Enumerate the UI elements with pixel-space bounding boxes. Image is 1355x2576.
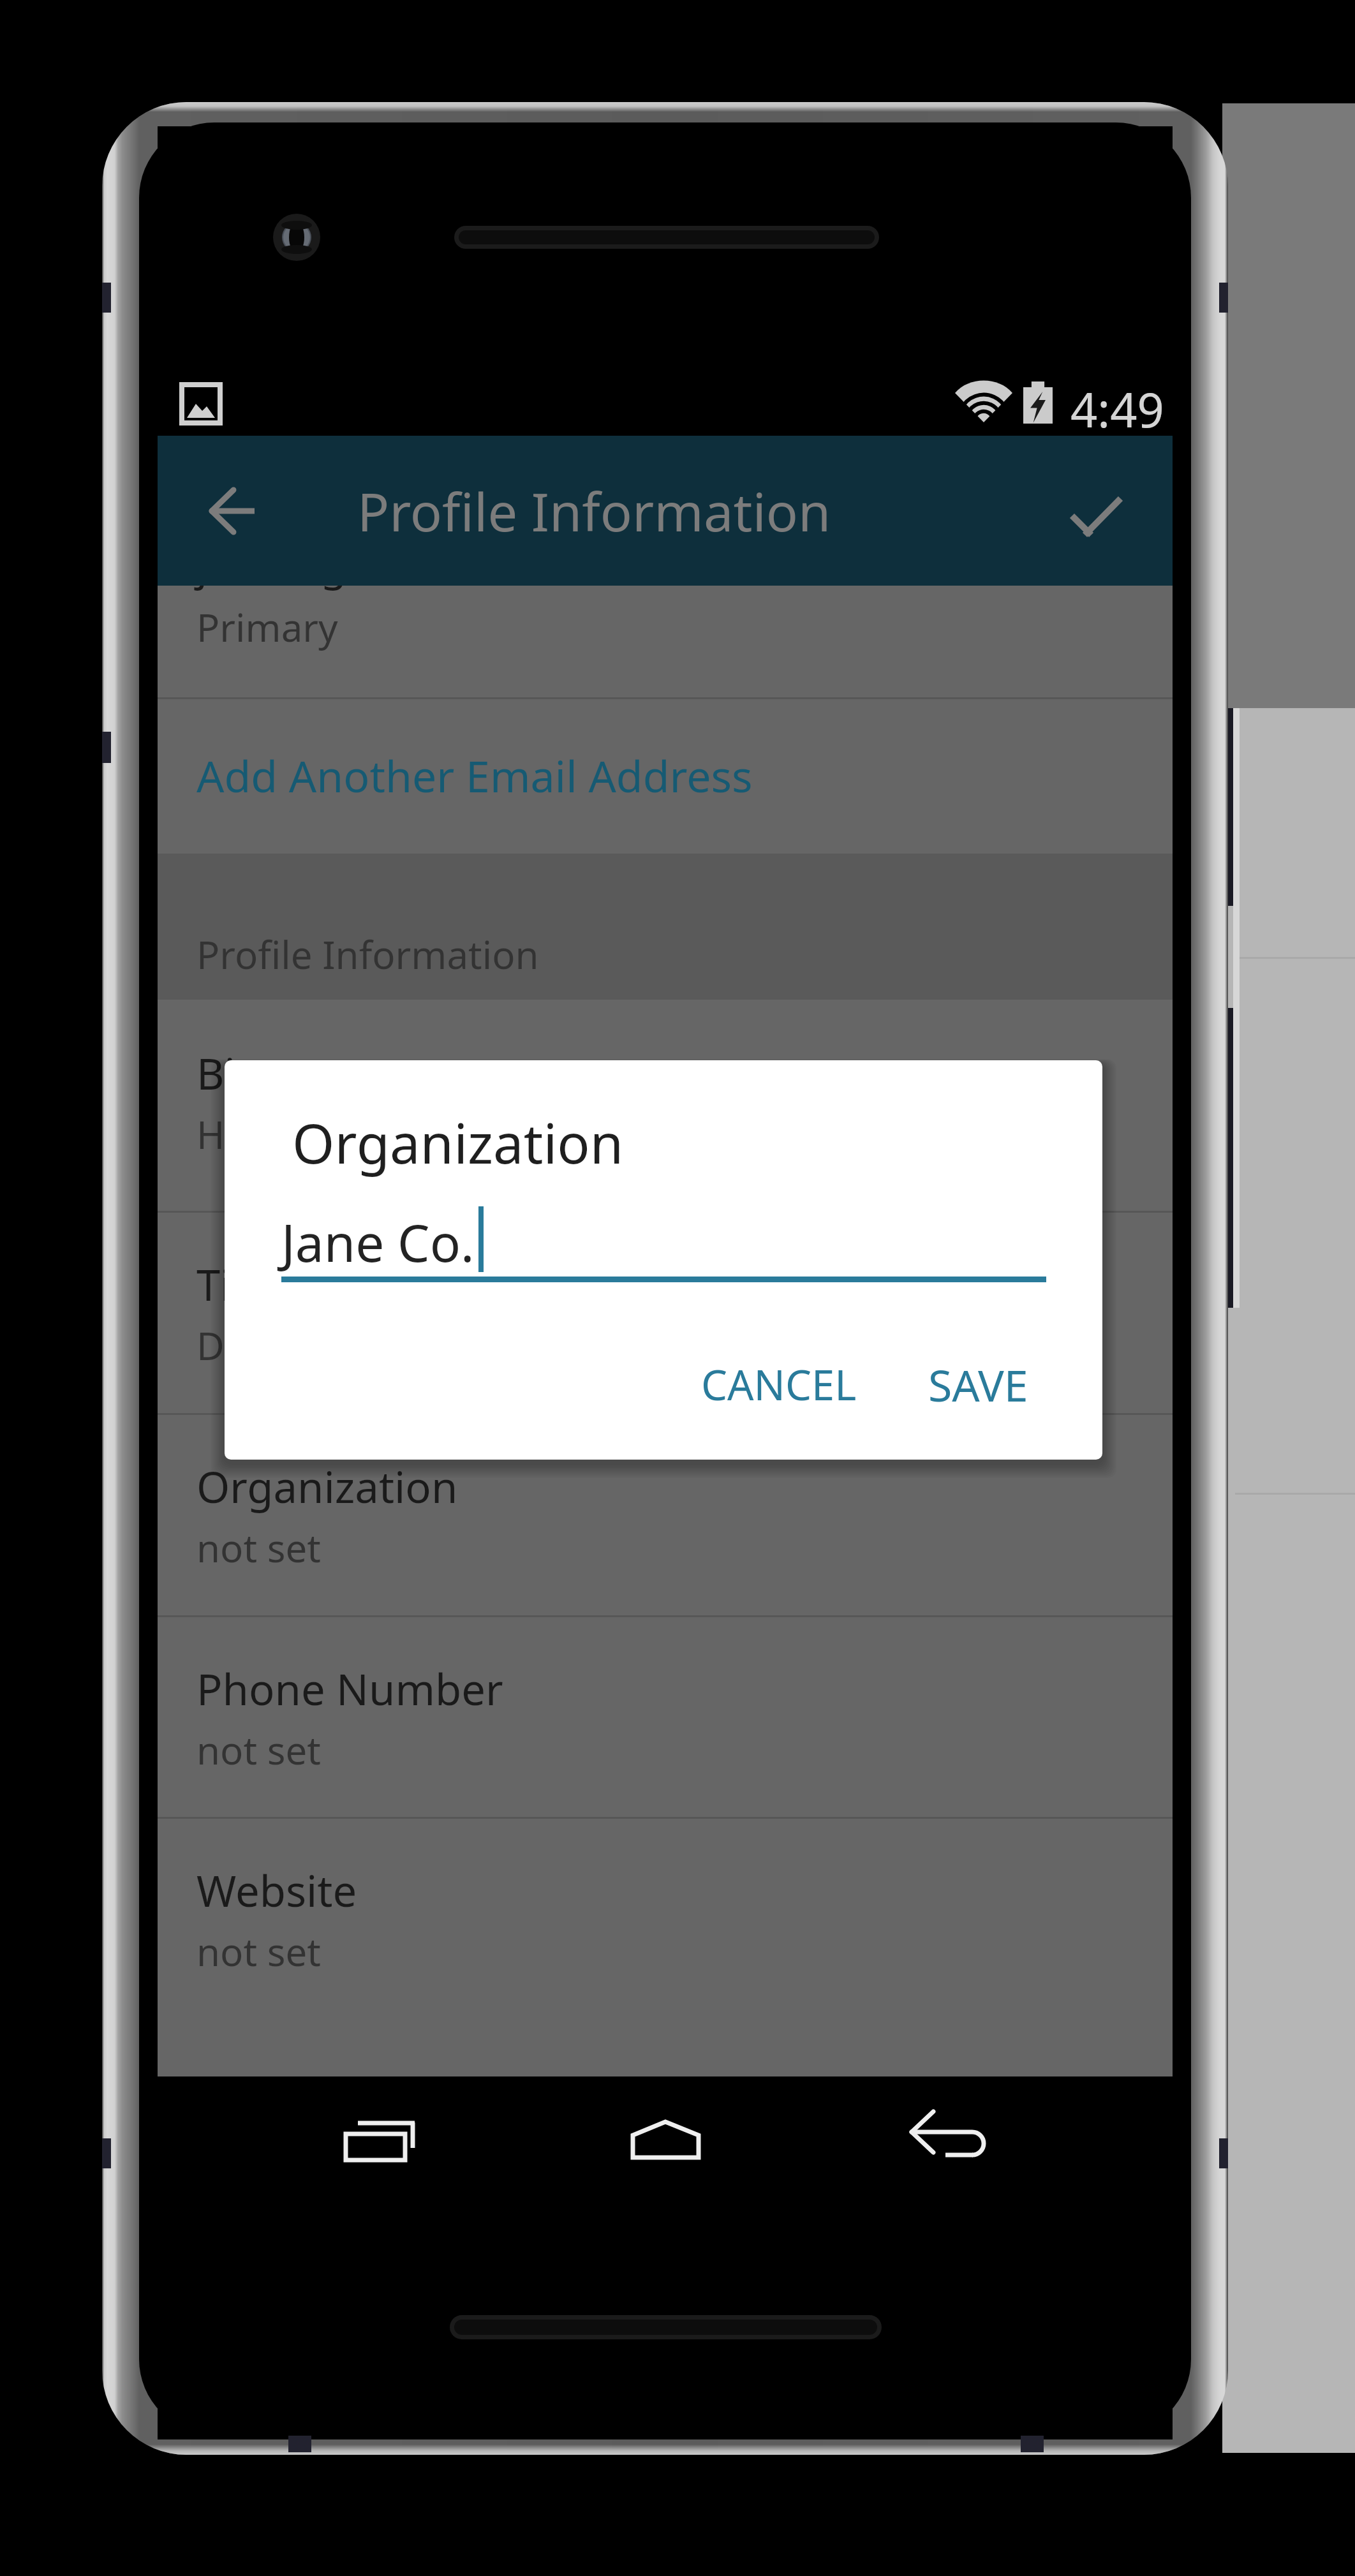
button[interactable]: Home bbox=[618, 2105, 715, 2188]
staticText: Timezone bbox=[196, 1255, 392, 1313]
button[interactable]: Add Another Email Address bbox=[158, 697, 1173, 854]
staticText: Default bbox=[196, 1319, 329, 1372]
staticText: jane@gmail.com bbox=[196, 586, 531, 593]
staticText: Jane Co. bbox=[281, 1207, 475, 1277]
staticText: Organization bbox=[196, 1457, 458, 1515]
staticText: Organization bbox=[292, 1106, 624, 1180]
staticText: Hi, I am Jane. I like horses and lon… bbox=[196, 1108, 834, 1160]
staticText: not set bbox=[196, 1724, 321, 1776]
staticText: CANCEL bbox=[701, 1356, 857, 1413]
button[interactable]: Website bbox=[158, 1817, 1173, 2019]
staticText: Bio bbox=[196, 1044, 262, 1102]
staticText: not set bbox=[196, 1521, 321, 1574]
staticText: 4:49 bbox=[1070, 377, 1164, 441]
button[interactable]: Back bbox=[898, 2105, 1000, 2188]
button[interactable]: Phone Number bbox=[158, 1615, 1173, 1817]
staticText: Website bbox=[196, 1861, 357, 1919]
staticText: Phone Number bbox=[196, 1659, 503, 1717]
button[interactable]: Timezone bbox=[158, 1211, 1173, 1413]
staticText: SAVE bbox=[928, 1355, 1028, 1414]
staticText: Primary bbox=[196, 601, 338, 653]
button[interactable]: Bio bbox=[158, 1000, 1173, 1211]
button[interactable]: Save bbox=[1059, 463, 1155, 559]
button[interactable]: jane@gmail.com bbox=[158, 586, 1173, 697]
button[interactable]: SAVE bbox=[905, 1345, 1051, 1425]
staticText: Add Another Email Address bbox=[196, 746, 753, 805]
staticText: not set bbox=[196, 1925, 321, 1978]
button[interactable]: CANCEL bbox=[681, 1345, 876, 1425]
button[interactable]: Recent apps bbox=[332, 2105, 434, 2188]
button[interactable]: Navigate up bbox=[189, 463, 285, 559]
staticText: Profile Information bbox=[196, 928, 539, 981]
staticText: Profile Information bbox=[357, 475, 831, 547]
button[interactable]: Organization bbox=[158, 1413, 1173, 1615]
